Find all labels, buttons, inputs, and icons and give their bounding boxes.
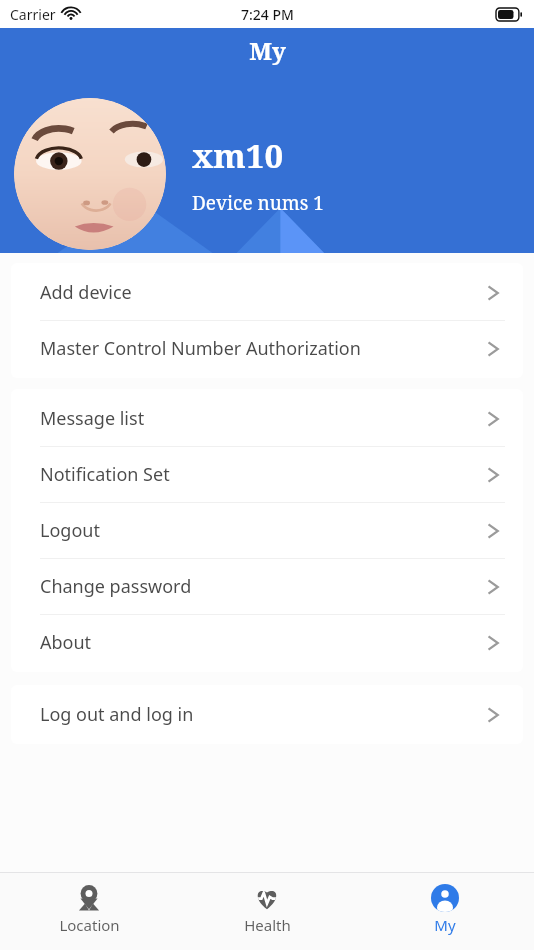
staticText: Change password xyxy=(40,574,485,599)
staticText: xm10 xyxy=(192,133,284,178)
staticText: Master Control Number Authorization xyxy=(40,336,485,361)
other: Location xyxy=(75,884,103,912)
staticText: Device nums 1 xyxy=(192,190,324,216)
staticText: My xyxy=(249,34,286,67)
button[interactable]: Notification Set xyxy=(11,447,523,502)
button[interactable]: Location xyxy=(0,873,178,950)
button[interactable]: Add device xyxy=(11,265,523,320)
staticText: 7:24 PM xyxy=(241,5,294,24)
button[interactable]: Master Control Number Authorization xyxy=(11,321,523,376)
staticText: Notification Set xyxy=(40,462,485,487)
other: My xyxy=(431,884,459,912)
other: Health xyxy=(253,884,281,912)
staticText: My xyxy=(434,915,456,935)
staticText: Logout xyxy=(40,518,485,543)
button[interactable]: About xyxy=(11,615,523,670)
staticText: Message list xyxy=(40,406,485,431)
button[interactable]: Log out and log in xyxy=(11,687,523,742)
staticText: Add device xyxy=(40,280,485,305)
staticText: Health xyxy=(244,915,291,935)
button[interactable]: My xyxy=(356,873,534,950)
button[interactable]: Health xyxy=(178,873,356,950)
staticText: Carrier xyxy=(10,5,56,24)
staticText: About xyxy=(40,630,485,655)
other: Profile photo xyxy=(14,98,166,250)
button[interactable]: Logout xyxy=(11,503,523,558)
button[interactable]: Message list xyxy=(11,391,523,446)
staticText: Log out and log in xyxy=(40,702,485,727)
button[interactable]: Change password xyxy=(11,559,523,614)
staticText: Location xyxy=(59,915,120,935)
